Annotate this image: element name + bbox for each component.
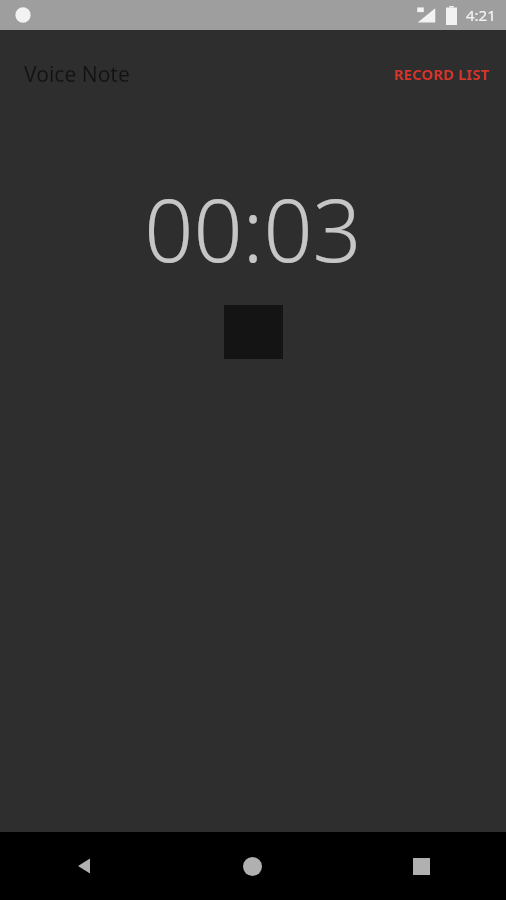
button[interactable]: Home <box>168 832 337 900</box>
staticText: 00:03 <box>144 170 362 287</box>
button[interactable]: Recent apps <box>337 832 506 900</box>
button[interactable]: Back <box>0 832 168 900</box>
staticText: RECORD LIST <box>394 64 490 84</box>
staticText: Voice Note <box>24 60 130 89</box>
button[interactable]: RECORD LIST <box>378 54 506 94</box>
staticText: 4:21 <box>466 5 496 25</box>
